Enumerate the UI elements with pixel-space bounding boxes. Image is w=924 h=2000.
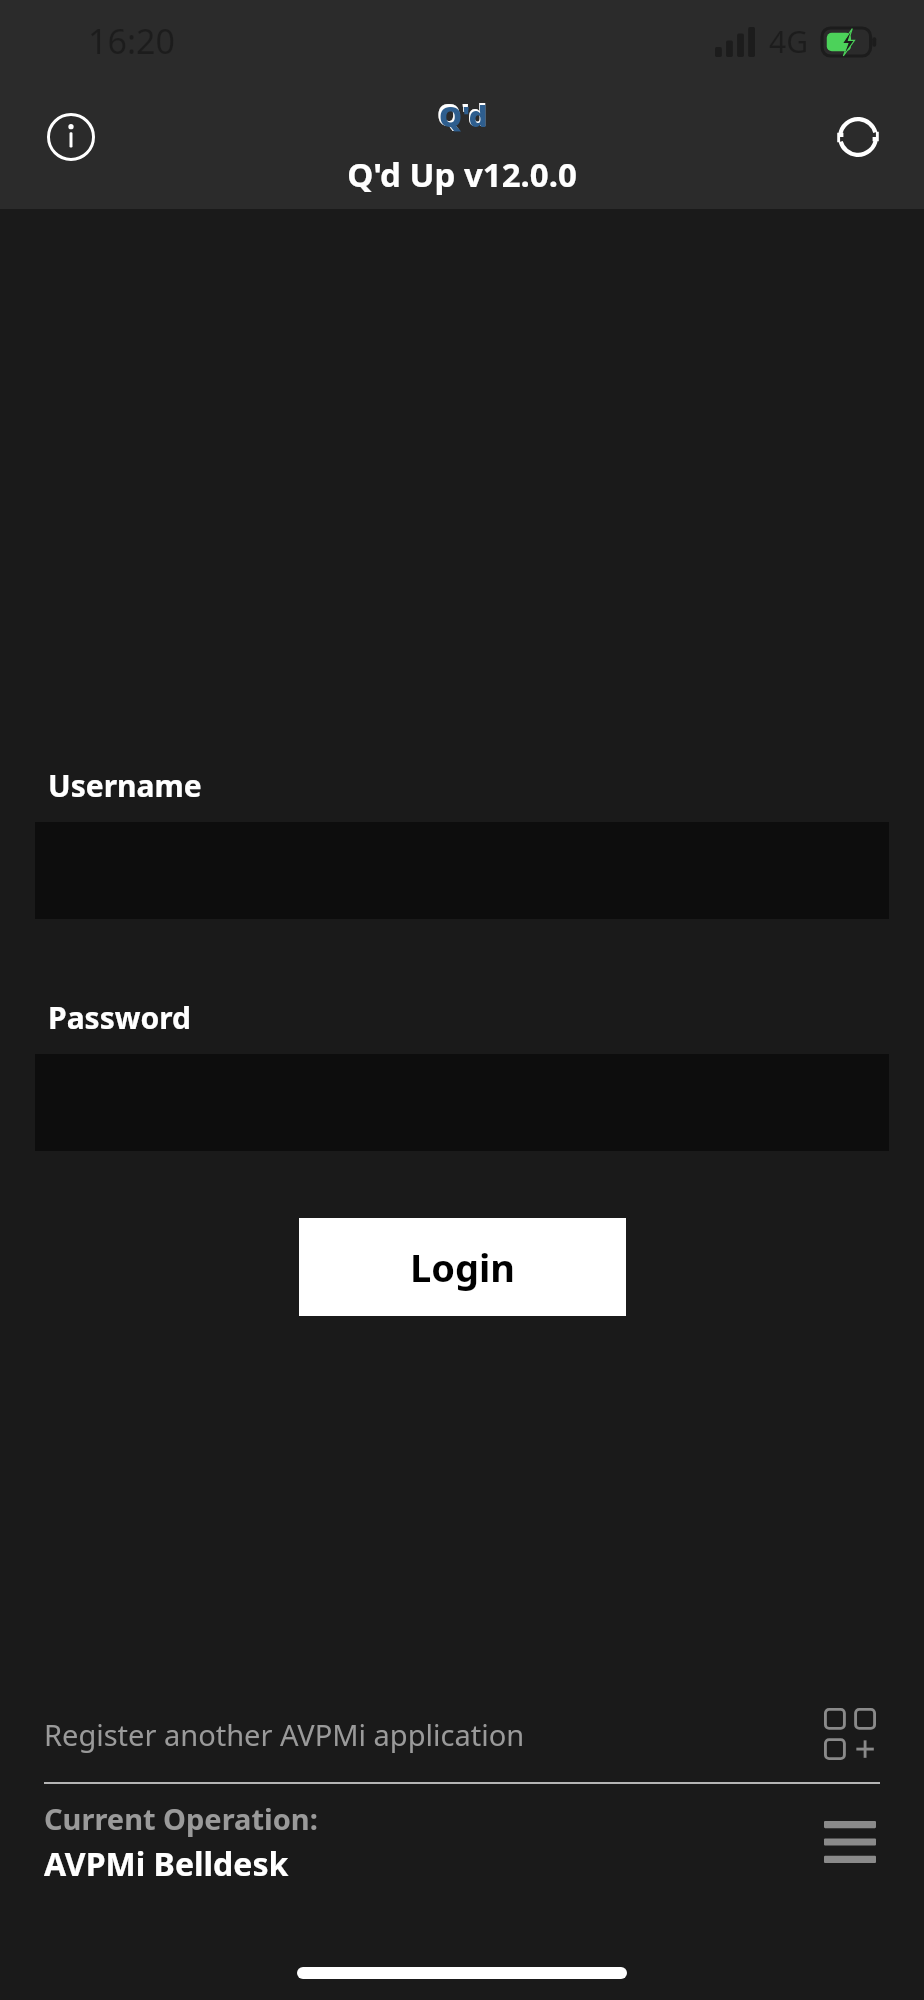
button[interactable]: Register another AVPMi application (0, 1686, 924, 1782)
staticText: Password (48, 997, 191, 1038)
staticText: 16:20 (88, 18, 175, 64)
button[interactable]: Refresh (814, 93, 902, 181)
button[interactable]: Current Operation: (0, 1784, 924, 1900)
button[interactable]: Menu (820, 1812, 880, 1872)
staticText: Current Operation: (44, 1799, 318, 1838)
staticText: up (443, 127, 483, 140)
button[interactable]: Add application (820, 1704, 880, 1764)
staticText: Username (48, 765, 202, 806)
staticText: Register another AVPMi application (44, 1715, 525, 1754)
staticText: Login (410, 1241, 516, 1293)
staticText: Q'd (439, 96, 488, 135)
staticText: Q'd (437, 94, 488, 135)
staticText: up (445, 128, 484, 141)
staticText: AVPMi Belldesk (44, 1842, 289, 1886)
staticText: 4G (769, 21, 808, 62)
staticText: Q'd Up v12.0.0 (347, 152, 577, 197)
button[interactable]: Login (299, 1218, 626, 1316)
button[interactable]: Information (27, 93, 115, 181)
